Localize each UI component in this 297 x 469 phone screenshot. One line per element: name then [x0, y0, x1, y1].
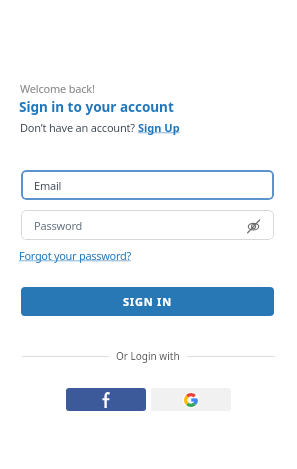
button[interactable]: SIGN IN [21, 287, 274, 316]
button[interactable] [151, 388, 231, 411]
staticText: Don’t have an account? [20, 120, 138, 135]
button[interactable]: Forgot your password? [19, 248, 131, 263]
button[interactable]: Email [21, 170, 274, 200]
staticText: Welcome back! [20, 81, 95, 96]
button[interactable]: Sign Up [138, 120, 180, 135]
button[interactable] [66, 388, 146, 411]
staticText: Password [34, 218, 83, 233]
staticText: SIGN IN [123, 294, 172, 309]
staticText: Sign in to your account [19, 98, 174, 116]
staticText: Email [34, 178, 62, 193]
staticText: Or Login with [116, 349, 180, 363]
button[interactable]: Password [21, 210, 274, 240]
